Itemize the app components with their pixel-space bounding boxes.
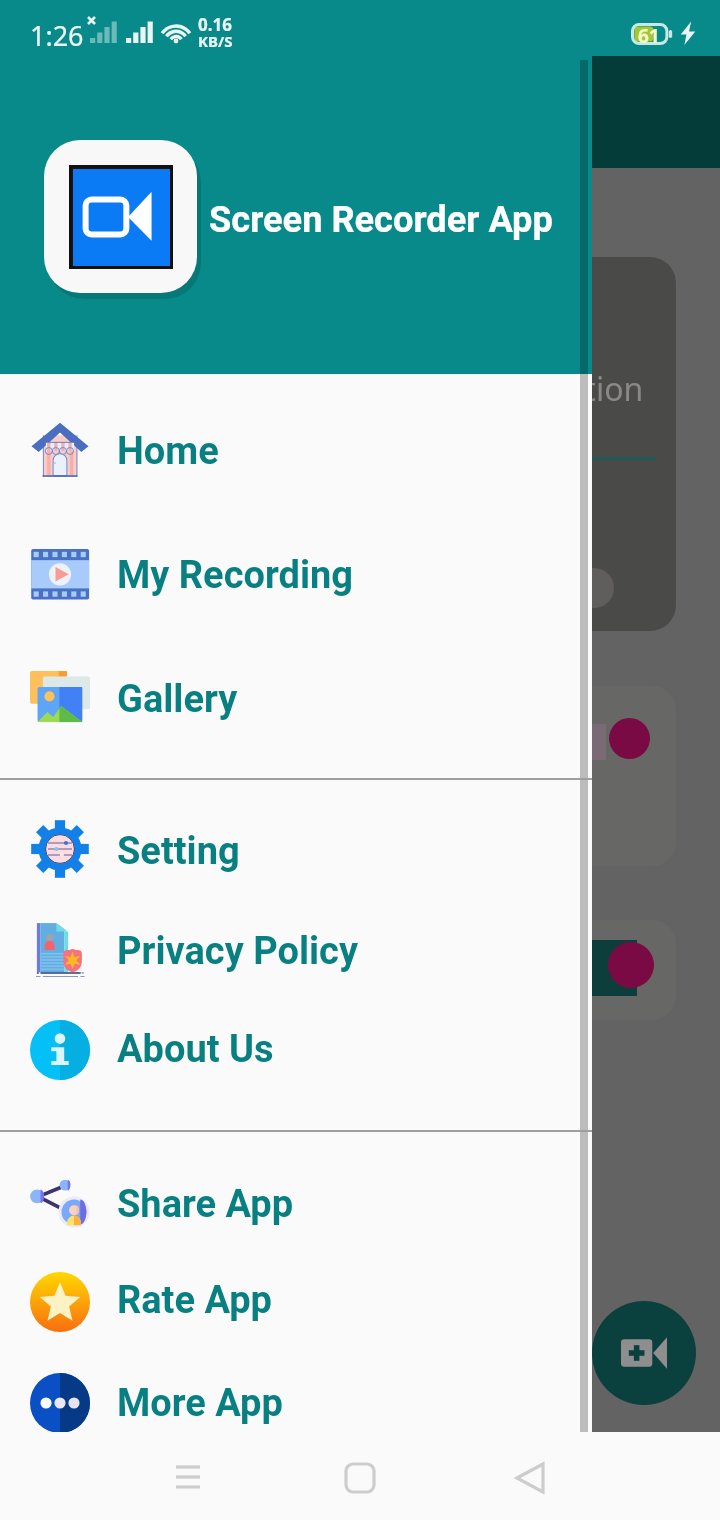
button[interactable]: More App — [0, 1363, 592, 1443]
staticText: Share App — [117, 1182, 294, 1227]
staticText: KB/S — [198, 31, 233, 51]
button[interactable]: Start recording — [592, 1301, 696, 1405]
button[interactable]: Share App — [0, 1164, 592, 1244]
button[interactable]: Gallery — [0, 659, 592, 739]
staticText: 61 — [638, 23, 660, 45]
button[interactable]: Recents — [158, 1448, 218, 1508]
staticText: More App — [117, 1381, 283, 1426]
button[interactable]: Setting — [0, 811, 592, 891]
staticText: Gallery — [117, 677, 238, 722]
staticText: 1:26 — [30, 17, 84, 54]
staticText: Rate App — [117, 1278, 272, 1323]
staticText: Setting — [117, 829, 240, 874]
button[interactable]: Home — [330, 1448, 390, 1508]
button[interactable]: Rate App — [0, 1260, 592, 1340]
button[interactable]: Home — [0, 411, 592, 491]
button[interactable]: Back — [500, 1448, 560, 1508]
staticText: 0.16 — [198, 13, 232, 36]
staticText: Screen Recorder App — [209, 198, 553, 240]
staticText: Screen Resolution — [374, 367, 644, 411]
button[interactable]: About Us — [0, 1009, 592, 1089]
staticText: Home — [117, 429, 219, 474]
staticText: My Recording — [117, 553, 353, 598]
staticText: Privacy Policy — [117, 929, 359, 974]
button[interactable]: Privacy Policy — [0, 911, 592, 991]
button[interactable]: My Recording — [0, 535, 592, 615]
staticText: About Us — [117, 1027, 274, 1072]
